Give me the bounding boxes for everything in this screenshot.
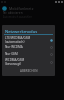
button[interactable]: Nur WCDMA: [2, 44, 55, 50]
other: Mobile network: [2, 6, 7, 11]
staticText: WCDMA/GSM: [5, 58, 25, 62]
button[interactable]: ABBRECHEN: [2, 66, 55, 76]
button[interactable]: Nur GSM: [2, 51, 55, 57]
button[interactable]: WCDMA/GSM: [2, 58, 55, 66]
staticText: Netzwerkmodus: [5, 29, 38, 35]
staticText: (bevorzugt): [5, 62, 22, 66]
staticText: ABBRECHEN: [20, 69, 38, 73]
staticText: Nr. aktivieren: [3, 11, 23, 15]
button[interactable]: LTE/WCDMA/GSM: [2, 36, 55, 44]
staticText: Nur GSM: [5, 52, 18, 56]
staticText: LTE/WCDMA/GSM: [5, 36, 31, 40]
staticText: (automatisch): [5, 40, 25, 44]
staticText: Mobilfunknetz: [9, 6, 34, 11]
staticText: Automatisch auswählen: [3, 15, 33, 19]
staticText: Nur WCDMA: [5, 45, 23, 49]
